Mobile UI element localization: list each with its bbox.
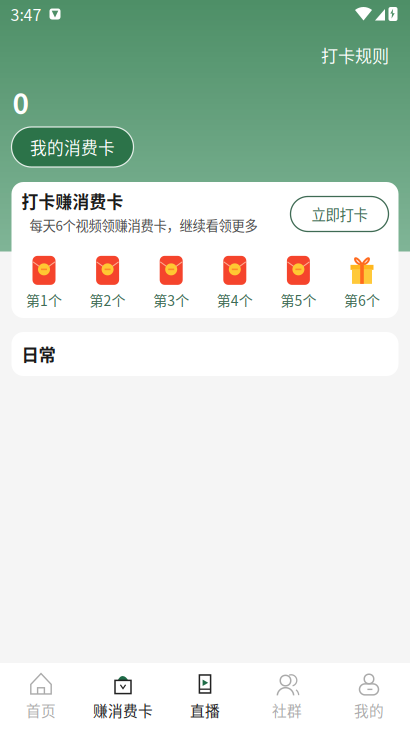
staticText: 我的消费卡 [30, 135, 115, 159]
button[interactable]: 首页 [0, 668, 82, 724]
staticText: 立即打卡 [311, 204, 367, 224]
button[interactable]: 直播 [164, 668, 246, 724]
button[interactable]: 赚消费卡 [82, 668, 164, 724]
button[interactable]: 我的消费卡 [11, 127, 133, 167]
button[interactable]: 打卡规则 [312, 38, 398, 72]
staticText: 第4个 [217, 290, 253, 310]
staticText: 0 [12, 82, 29, 122]
button[interactable]: 立即打卡 [290, 196, 388, 231]
staticText: 第5个 [280, 290, 316, 310]
staticText: 打卡赚消费卡 [21, 189, 123, 213]
staticText: 第2个 [90, 290, 126, 310]
staticText: 第1个 [26, 290, 62, 310]
staticText: 日常 [21, 341, 55, 367]
staticText: 每天6个视频领赚消费卡，继续看领更多 [29, 215, 257, 235]
staticText: 我的 [354, 699, 384, 721]
staticText: 首页 [26, 699, 56, 721]
staticText: 直播 [190, 699, 220, 721]
staticText: 第3个 [153, 290, 189, 310]
staticText: 3:47 [10, 2, 41, 26]
button[interactable]: 我的 [328, 668, 410, 724]
staticText: 赚消费卡 [93, 699, 153, 721]
staticText: 社群 [272, 699, 302, 721]
staticText: 打卡规则 [321, 43, 389, 67]
staticText: 第6个 [344, 290, 380, 310]
button[interactable]: 社群 [246, 668, 328, 724]
